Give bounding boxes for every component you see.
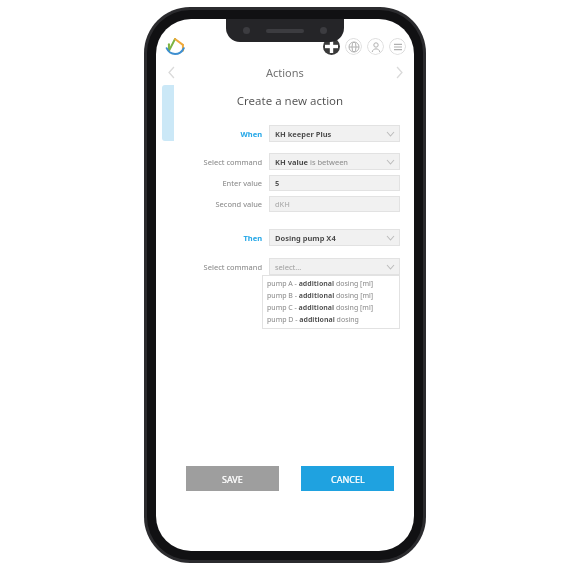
- staticText: Then: [180, 233, 262, 243]
- button[interactable]: Previous: [162, 63, 180, 81]
- button[interactable]: Menu: [389, 38, 406, 55]
- staticText: Actions: [266, 65, 304, 80]
- button[interactable]: App logo: [164, 35, 186, 57]
- button[interactable]: Profile: [367, 38, 384, 55]
- staticText: pump A - additional dosing [ml]: [267, 279, 374, 289]
- staticText: CANCEL: [331, 473, 365, 485]
- button[interactable]: pump D - additional dosing: [267, 314, 395, 326]
- staticText: pump C - additional dosing [ml]: [267, 303, 374, 313]
- button[interactable]: Language: [345, 38, 362, 55]
- button[interactable]: Next: [390, 63, 408, 81]
- button[interactable]: 5: [269, 175, 400, 191]
- button[interactable]: pump B - additional dosing [ml]: [267, 290, 395, 302]
- button[interactable]: SAVE: [186, 466, 279, 491]
- staticText: SAVE: [222, 473, 243, 485]
- staticText: pump D - additional dosing: [267, 315, 359, 325]
- staticText: select...: [275, 262, 302, 272]
- button[interactable]: pump C - additional dosing [ml]: [267, 302, 395, 314]
- button[interactable]: KH value is between: [269, 153, 400, 170]
- button[interactable]: KH keeper Plus: [269, 125, 400, 142]
- button[interactable]: select...: [269, 258, 400, 275]
- staticText: Create a new action: [174, 93, 406, 109]
- staticText: When: [180, 129, 262, 139]
- staticText: dKH: [275, 199, 290, 209]
- button[interactable]: Navigate: [323, 38, 340, 55]
- staticText: KH keeper Plus: [275, 129, 332, 139]
- staticText: Select command: [180, 157, 262, 167]
- button[interactable]: pump A - additional dosing [ml]: [267, 278, 395, 290]
- staticText: Select command: [180, 262, 262, 272]
- staticText: Dosing pump X4: [275, 233, 336, 243]
- button[interactable]: Dosing pump X4: [269, 229, 400, 246]
- staticText: pump B - additional dosing [ml]: [267, 291, 374, 301]
- staticText: KH value is between: [275, 157, 348, 167]
- button[interactable]: CANCEL: [301, 466, 394, 491]
- staticText: 5: [275, 178, 280, 188]
- staticText: Second value: [180, 199, 262, 209]
- button[interactable]: dKH: [269, 196, 400, 212]
- staticText: Enter value: [180, 178, 262, 188]
